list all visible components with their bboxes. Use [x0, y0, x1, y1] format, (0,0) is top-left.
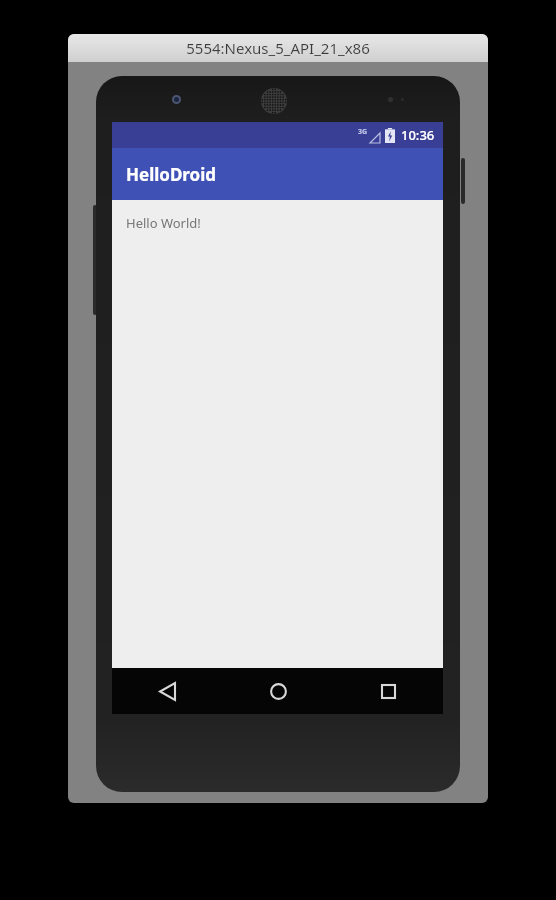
button[interactable]: Recent apps: [333, 668, 443, 714]
button[interactable]: Home: [223, 668, 333, 714]
button[interactable]: HelloDroid: [112, 148, 443, 200]
staticText: 3G: [358, 127, 368, 137]
staticText: 10:36: [401, 126, 435, 144]
staticText: Hello World!: [126, 214, 201, 232]
staticText: 5554:Nexus_5_API_21_x86: [186, 38, 370, 58]
button[interactable]: Back: [112, 668, 223, 714]
staticText: HelloDroid: [126, 163, 217, 186]
